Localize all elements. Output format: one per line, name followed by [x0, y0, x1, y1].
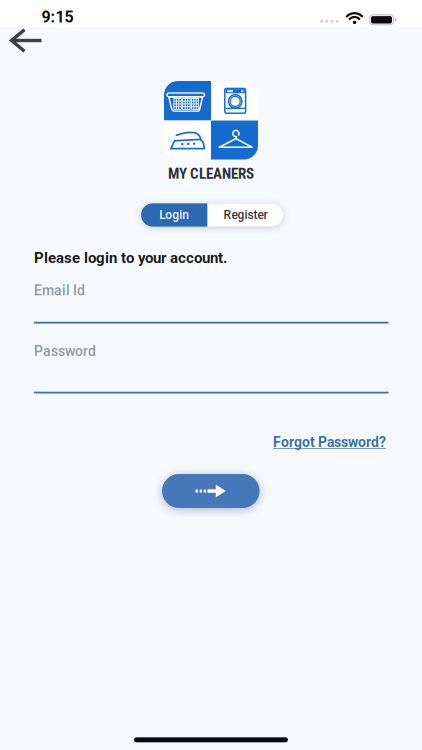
staticText: Please login to your account.	[34, 249, 227, 267]
button[interactable]: Forgot Password?	[273, 434, 386, 450]
button[interactable]: Login	[141, 203, 207, 227]
staticText: MY CLEANERS	[168, 165, 254, 182]
button[interactable]: Email Id	[34, 278, 388, 323]
button[interactable]: Back	[8, 25, 48, 55]
button[interactable]: Register	[207, 203, 283, 227]
staticText: 9:15	[41, 8, 73, 26]
staticText: Login	[159, 208, 189, 222]
button[interactable]: Login	[162, 474, 260, 508]
staticText: Forgot Password?	[273, 434, 386, 450]
staticText: Email Id	[34, 282, 85, 299]
staticText: Password	[34, 343, 96, 359]
staticText: Register	[223, 208, 267, 222]
button[interactable]: Password	[34, 339, 388, 393]
